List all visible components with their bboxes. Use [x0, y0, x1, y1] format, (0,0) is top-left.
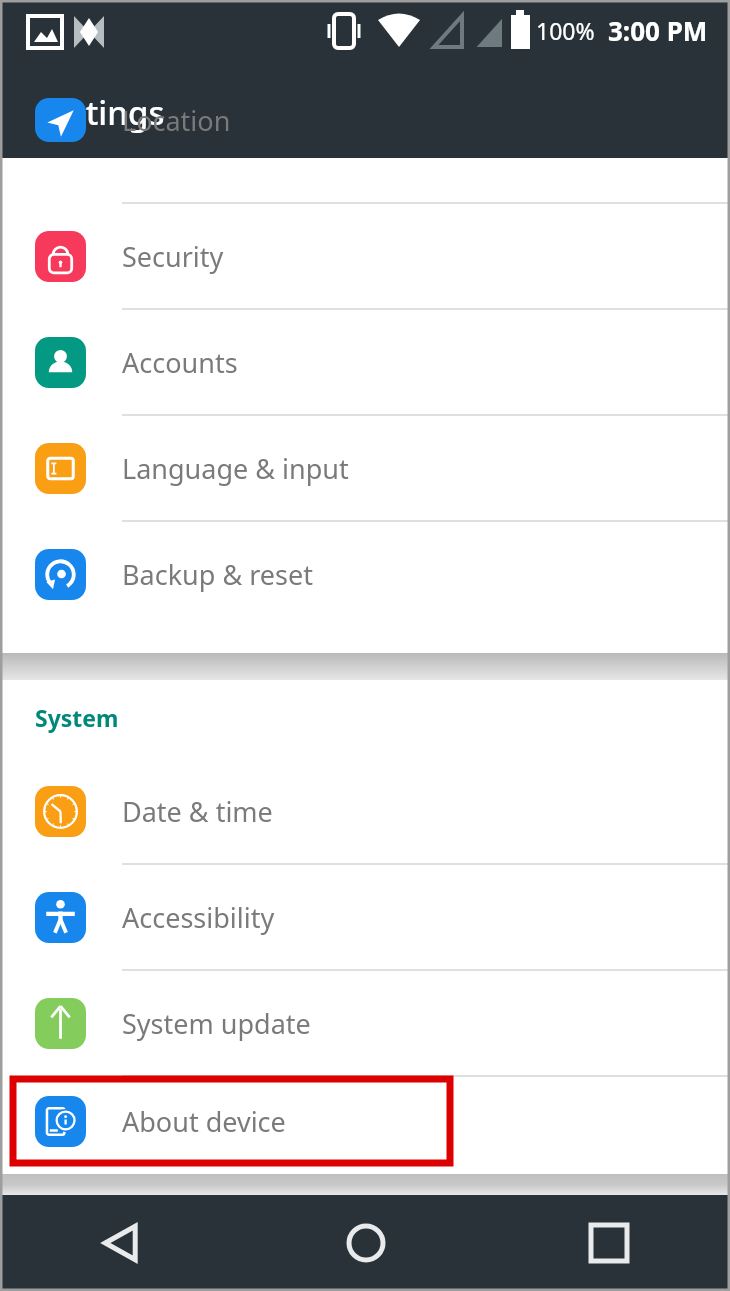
button[interactable]: Back	[0, 1195, 244, 1291]
button[interactable]: Recent apps	[487, 1195, 730, 1291]
staticText: About device	[122, 1103, 286, 1140]
button[interactable]: Backup & reset	[0, 522, 730, 626]
staticText: System update	[122, 1005, 311, 1042]
staticText: Accessibility	[122, 899, 275, 936]
staticText: Settings	[36, 90, 165, 135]
button[interactable]: Security	[0, 204, 730, 308]
button[interactable]: Location	[0, 98, 730, 142]
button[interactable]: Language & input	[0, 416, 730, 520]
button[interactable]: Accessibility	[0, 865, 730, 969]
staticText: Security	[122, 238, 224, 275]
staticText: Accounts	[122, 344, 238, 381]
staticText: Language & input	[122, 450, 349, 487]
button[interactable]: Home	[244, 1195, 487, 1291]
staticText: System	[35, 702, 119, 733]
button[interactable]: Accounts	[0, 310, 730, 414]
staticText: Date & time	[122, 793, 273, 830]
staticText: Location	[122, 102, 231, 139]
button[interactable]: About device	[0, 1077, 730, 1165]
staticText: 100%	[536, 15, 595, 46]
button[interactable]: Date & time	[0, 759, 730, 863]
button[interactable]: System update	[0, 971, 730, 1075]
staticText: 3:00 PM	[608, 13, 708, 48]
staticText: Backup & reset	[122, 556, 313, 593]
